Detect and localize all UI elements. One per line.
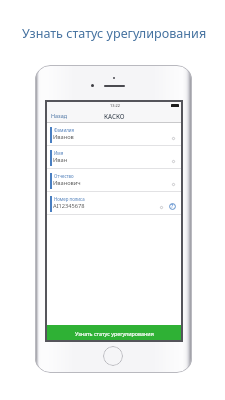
button[interactable]: Очистить xyxy=(171,182,175,186)
staticText: Имя xyxy=(54,150,64,156)
button[interactable]: Номер полиса xyxy=(46,192,182,214)
button[interactable]: Очистить xyxy=(171,136,175,140)
button[interactable]: Узнать статус урегулирования xyxy=(46,325,182,341)
staticText: ? xyxy=(171,203,174,210)
staticText: Иван xyxy=(53,156,68,164)
staticText: Назад xyxy=(51,112,67,119)
button[interactable]: Имя xyxy=(46,146,182,168)
staticText: Номер полиса xyxy=(54,196,85,202)
staticText: AI12345678 xyxy=(53,202,85,210)
staticText: КАСКО xyxy=(104,112,125,120)
staticText: Узнать статус урегулирования xyxy=(75,330,154,337)
staticText: Фамилия xyxy=(54,127,74,133)
staticText: Узнать статус урегулирования xyxy=(22,25,207,42)
staticText: Отчество xyxy=(54,173,74,179)
button[interactable]: Отчество xyxy=(46,169,182,191)
staticText: 13:22 xyxy=(110,103,120,108)
staticText: Иванович xyxy=(53,179,81,187)
button[interactable]: Информация xyxy=(169,203,176,210)
button[interactable]: Фамилия xyxy=(46,123,182,145)
button[interactable]: Очистить xyxy=(171,159,175,163)
staticText: Иванов xyxy=(53,133,74,141)
button[interactable]: Очистить xyxy=(159,205,163,209)
button[interactable]: Назад xyxy=(51,112,67,119)
